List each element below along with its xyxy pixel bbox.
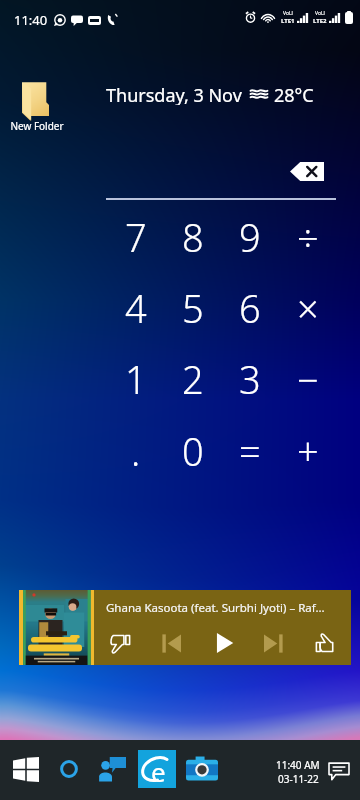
- button[interactable]: +: [280, 416, 336, 486]
- button[interactable]: 1: [108, 344, 164, 414]
- staticText: LTE1: [281, 17, 295, 25]
- staticText: 03-11-22: [278, 772, 319, 786]
- button[interactable]: Internet Explorer: [138, 750, 176, 788]
- staticText: −: [297, 353, 319, 405]
- staticText: 6: [239, 282, 261, 334]
- button[interactable]: 9: [222, 202, 278, 272]
- staticText: e: [151, 754, 166, 784]
- button[interactable]: 6: [222, 273, 278, 343]
- staticText: 3: [239, 353, 261, 405]
- staticText: 0: [182, 425, 204, 477]
- button[interactable]: 11:40 AM: [276, 758, 320, 786]
- staticText: 11:40: [14, 11, 48, 29]
- button[interactable]: Notifications: [328, 760, 350, 782]
- staticText: Ghana Kasoota (feat. Surbhi Jyoti) – Raf…: [106, 600, 325, 616]
- button[interactable]: 3: [222, 344, 278, 414]
- staticText: Thursday, 3 Nov: [106, 83, 242, 105]
- button[interactable]: Camera: [181, 748, 223, 790]
- staticText: +: [297, 425, 319, 477]
- staticText: 5: [182, 282, 204, 334]
- button[interactable]: 7: [108, 202, 164, 272]
- staticText: ÷: [297, 211, 319, 263]
- button[interactable]: Like: [308, 626, 342, 660]
- button[interactable]: 2: [165, 344, 221, 414]
- button[interactable]: 5: [165, 273, 221, 343]
- staticText: VoLl: [315, 10, 325, 17]
- staticText: 2: [182, 353, 204, 405]
- staticText: 28°C: [274, 83, 314, 105]
- button[interactable]: 8: [165, 202, 221, 272]
- staticText: VoLl: [283, 10, 293, 17]
- button[interactable]: −: [280, 344, 336, 414]
- button[interactable]: ×: [280, 273, 336, 343]
- button[interactable]: ÷: [280, 202, 336, 272]
- staticText: 1: [125, 353, 147, 405]
- staticText: 8: [182, 211, 204, 263]
- button[interactable]: Dislike: [103, 626, 137, 660]
- staticText: 7: [125, 211, 147, 263]
- button[interactable]: Previous: [154, 626, 188, 660]
- button[interactable]: New Folder: [6, 78, 68, 134]
- staticText: 9: [239, 211, 261, 263]
- staticText: .: [131, 425, 141, 477]
- button[interactable]: Thursday, 3 Nov: [106, 83, 314, 105]
- staticText: 4: [125, 282, 147, 334]
- staticText: New Folder: [10, 119, 64, 133]
- button[interactable]: Start: [5, 748, 47, 790]
- button[interactable]: Cortana: [48, 748, 90, 790]
- staticText: ×: [297, 282, 319, 334]
- button[interactable]: .: [108, 416, 164, 486]
- button[interactable]: People: [91, 748, 133, 790]
- button[interactable]: 4: [108, 273, 164, 343]
- button[interactable]: =: [222, 416, 278, 486]
- staticText: =: [239, 425, 261, 477]
- button[interactable]: Album art: [19, 590, 94, 665]
- staticText: LTE2: [313, 17, 327, 25]
- button[interactable]: Next: [256, 626, 290, 660]
- button[interactable]: 0: [165, 416, 221, 486]
- button[interactable]: Backspace: [290, 162, 324, 181]
- button[interactable]: Play: [207, 626, 241, 660]
- staticText: 11:40 AM: [276, 758, 320, 772]
